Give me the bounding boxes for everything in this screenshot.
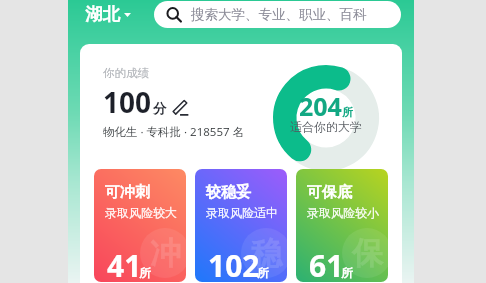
staticText: 录取风险适中 <box>206 205 278 220</box>
staticText: 所 <box>257 266 269 280</box>
staticText: 可冲刺 <box>105 183 150 202</box>
staticText: 204 <box>299 89 342 123</box>
staticText: 录取风险较小 <box>307 205 379 220</box>
staticText: 可保底 <box>307 183 352 202</box>
staticText: 分 <box>153 100 167 117</box>
staticText: 所 <box>341 266 353 280</box>
staticText: 适合你的大学 <box>290 119 362 134</box>
staticText: 搜索大学、专业、职业、百科 <box>191 6 367 23</box>
staticText: 所 <box>139 266 151 280</box>
staticText: 稳 <box>251 234 282 273</box>
staticText: 物化生 · 专科批 · 218557 名 <box>103 124 245 140</box>
button[interactable]: 稳 <box>195 169 287 282</box>
staticText: 湖北 <box>85 3 120 25</box>
staticText: 41 <box>107 245 142 282</box>
staticText: 102 <box>208 245 260 282</box>
staticText: 较稳妥 <box>206 183 251 202</box>
staticText: 冲 <box>150 234 181 273</box>
button[interactable]: 搜索大学、专业、职业、百科 <box>154 1 401 28</box>
staticText: 保 <box>352 234 383 273</box>
button[interactable]: 湖北 <box>85 3 131 25</box>
button[interactable]: Edit score <box>173 100 189 116</box>
button[interactable]: 保 <box>296 169 388 282</box>
staticText: 录取风险较大 <box>105 205 177 220</box>
staticText: 100 <box>103 83 152 121</box>
staticText: 所 <box>342 105 353 119</box>
staticText: 61 <box>309 245 344 282</box>
staticText: 你的成绩 <box>103 66 149 80</box>
button[interactable]: 冲 <box>94 169 186 282</box>
